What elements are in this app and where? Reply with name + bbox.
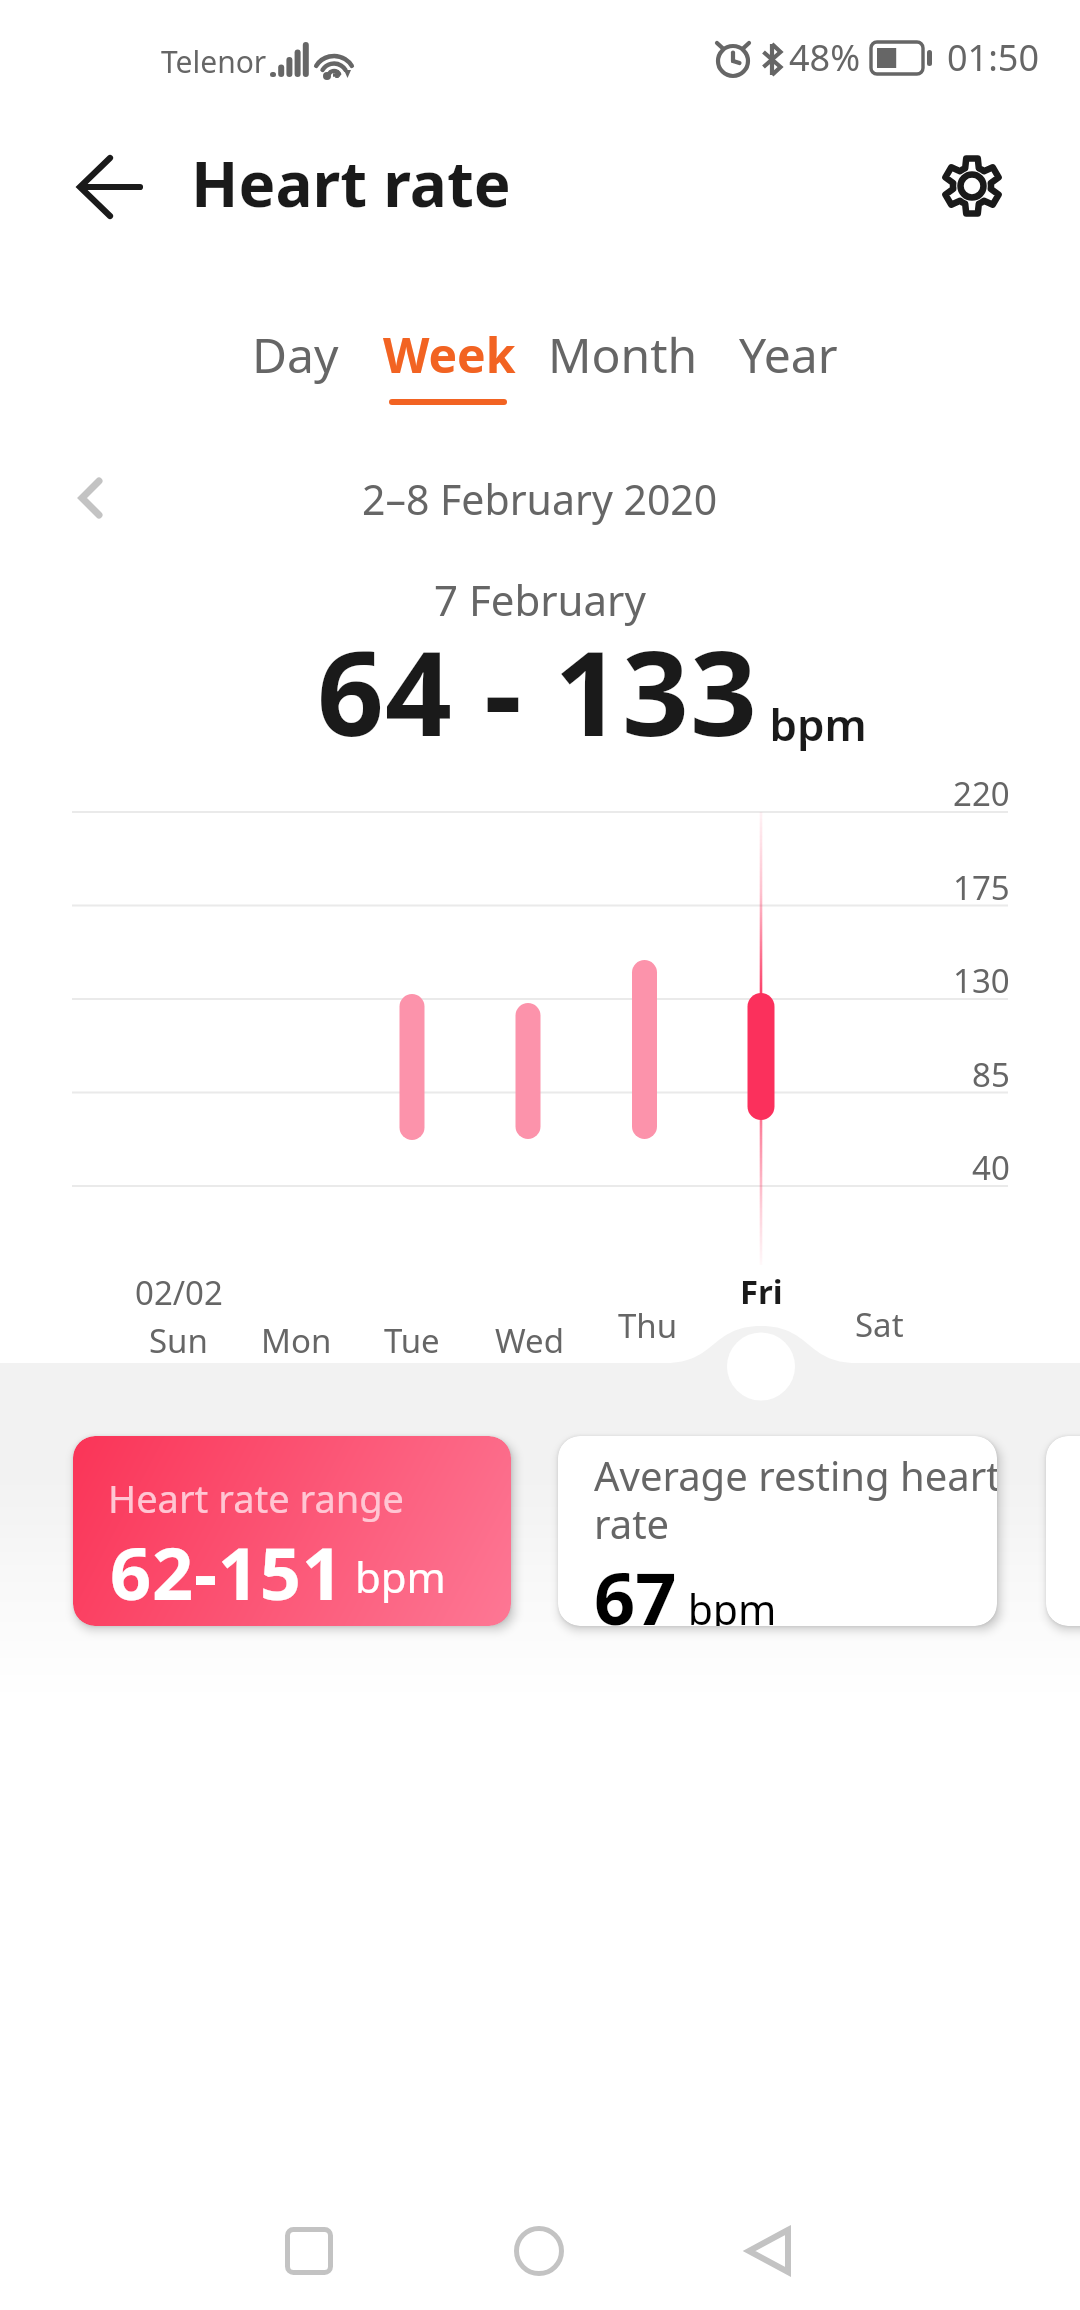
button[interactable]: Month	[538, 322, 708, 404]
staticText: bpm	[344, 1548, 446, 1605]
staticText: Day	[252, 322, 339, 387]
button[interactable]: Recents	[249, 2214, 369, 2288]
button[interactable]: Back	[56, 139, 152, 235]
button[interactable]: Home	[479, 2214, 599, 2288]
staticText: Thu	[618, 1303, 678, 1348]
staticText: Mon	[261, 1318, 332, 1363]
staticText: 48%	[789, 33, 861, 82]
staticText: 40	[972, 1145, 1010, 1190]
staticText: Heart rate range	[108, 1472, 405, 1524]
staticText: Week	[383, 322, 516, 387]
staticText: 01:50	[947, 33, 1040, 82]
button[interactable]: Average resting heart rate	[558, 1436, 997, 1626]
staticText: Month	[548, 322, 698, 387]
button[interactable]: Week	[364, 322, 534, 404]
staticText: Heart rate	[191, 141, 511, 225]
staticText: 64 - 133	[317, 611, 758, 770]
button[interactable]: Settings	[926, 140, 1018, 232]
staticText: 175	[953, 865, 1010, 910]
staticText: bpm	[758, 694, 867, 754]
staticText: bpm	[677, 1581, 777, 1626]
button[interactable]: Year	[703, 322, 873, 404]
staticText: Year	[739, 322, 838, 387]
staticText: 220	[953, 771, 1010, 816]
staticText: Telenor	[161, 41, 267, 82]
staticText: Tue	[384, 1318, 440, 1363]
staticText: Fri	[740, 1269, 783, 1314]
button[interactable]: Day	[210, 322, 380, 404]
staticText: 85	[972, 1052, 1010, 1097]
button[interactable]: Back	[708, 2214, 828, 2288]
staticText: 02/02	[135, 1270, 223, 1315]
staticText: Wed	[495, 1318, 564, 1363]
staticText: 2–8 February 2020	[362, 471, 718, 527]
button[interactable]: More heart rate statistics	[1046, 1436, 1080, 1626]
staticText: 7 February	[434, 571, 646, 628]
staticText: 62-151	[110, 1523, 344, 1621]
staticText: 130	[953, 958, 1010, 1003]
staticText: Average resting heart rate	[594, 1448, 997, 1551]
staticText: Sat	[855, 1302, 904, 1347]
staticText: Sun	[149, 1318, 208, 1363]
staticText: 67	[594, 1548, 677, 1626]
button[interactable]: Previous week	[50, 458, 130, 538]
button[interactable]: Heart rate range	[73, 1436, 511, 1626]
